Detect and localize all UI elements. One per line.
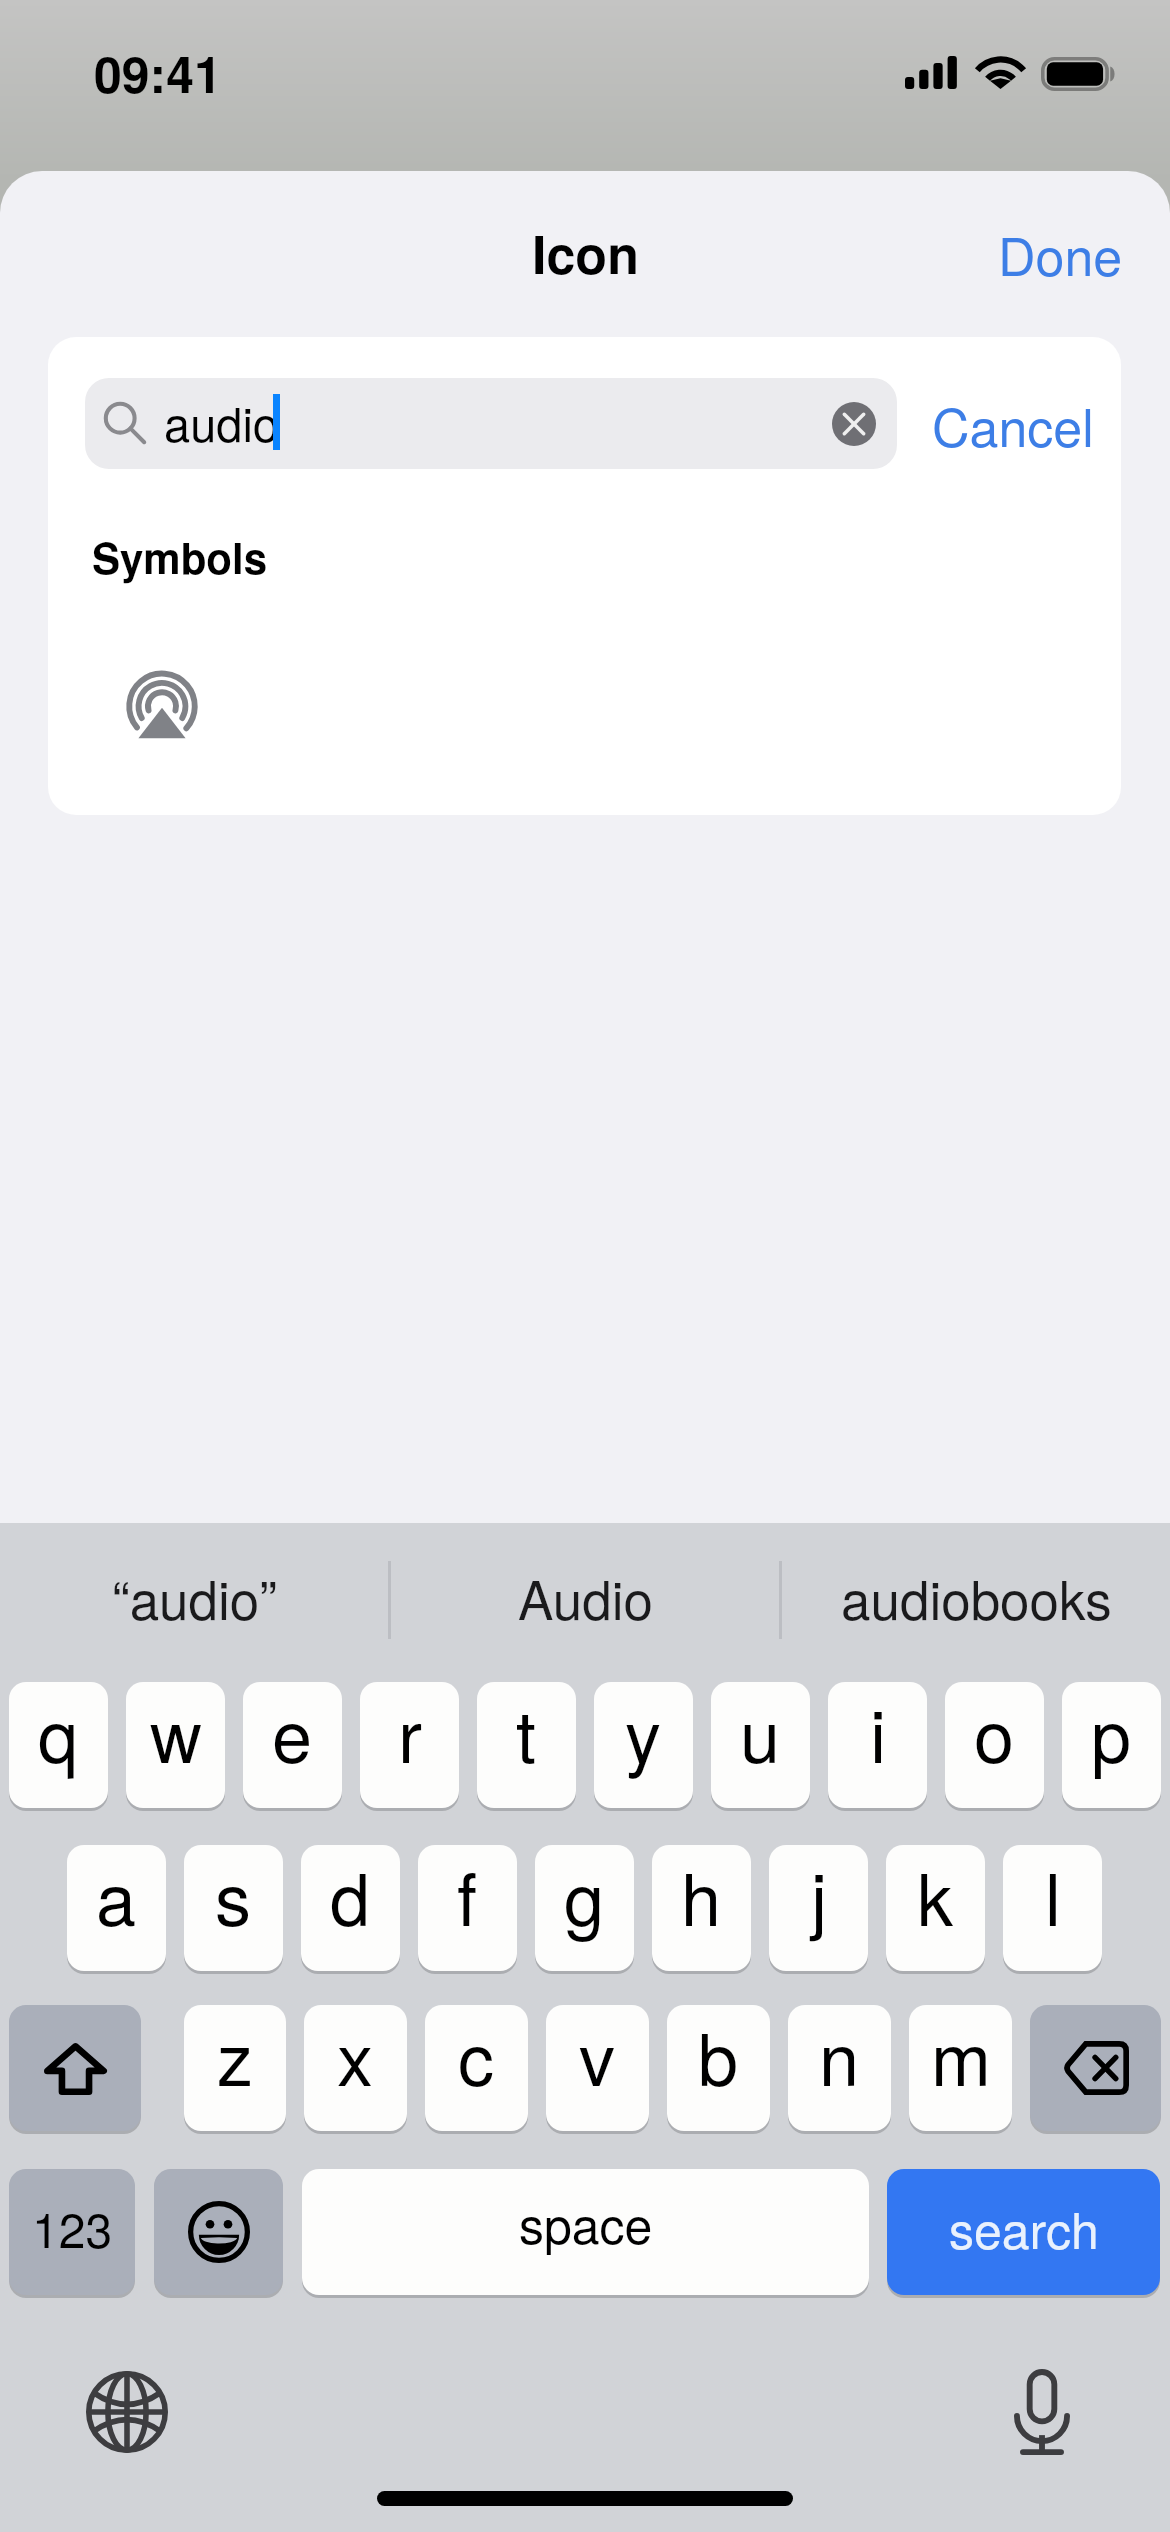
button[interactable]: s — [184, 1845, 283, 1971]
staticText: w — [150, 1682, 202, 1783]
button[interactable]: c — [425, 2005, 528, 2131]
button[interactable]: Backspace — [1030, 2005, 1161, 2131]
button[interactable]: audiobooks — [782, 1523, 1170, 1676]
button[interactable]: l — [1003, 1845, 1102, 1971]
staticText: audiobooks — [841, 1559, 1112, 1635]
staticText: l — [1045, 1845, 1061, 1946]
button[interactable]: v — [546, 2005, 649, 2131]
staticText: b — [698, 2005, 739, 2106]
staticText: y — [625, 1682, 662, 1783]
button[interactable]: Emoji keyboard — [154, 2169, 283, 2295]
button[interactable]: g — [535, 1845, 634, 1971]
button[interactable]: audio — [85, 378, 897, 469]
button[interactable]: y — [594, 1682, 693, 1808]
staticText: t — [516, 1682, 537, 1783]
button[interactable]: Cancel — [932, 378, 1094, 469]
button[interactable]: r — [360, 1682, 459, 1808]
button[interactable]: Done — [974, 200, 1147, 306]
staticText: s — [215, 1845, 252, 1946]
button[interactable]: search — [887, 2169, 1160, 2295]
staticText: h — [681, 1845, 722, 1946]
button[interactable]: Audio — [391, 1523, 779, 1676]
staticText: p — [1091, 1682, 1132, 1783]
button[interactable]: a — [67, 1845, 166, 1971]
staticText: “audio” — [112, 1559, 277, 1635]
button[interactable]: t — [477, 1682, 576, 1808]
staticText: i — [870, 1682, 886, 1783]
staticText: z — [217, 2005, 254, 2106]
staticText: u — [740, 1682, 781, 1783]
staticText: Icon — [532, 215, 639, 289]
staticText: j — [811, 1845, 827, 1946]
staticText: g — [564, 1845, 605, 1946]
staticText: Cancel — [932, 387, 1094, 461]
button[interactable]: “audio” — [0, 1523, 388, 1676]
button[interactable]: j — [769, 1845, 868, 1971]
staticText: audio — [164, 388, 279, 455]
button[interactable]: x — [304, 2005, 407, 2131]
staticText: r — [398, 1682, 422, 1783]
button[interactable]: e — [243, 1682, 342, 1808]
staticText: e — [272, 1682, 313, 1783]
button[interactable]: i — [828, 1682, 927, 1808]
staticText: x — [337, 2005, 374, 2106]
button[interactable]: m — [909, 2005, 1012, 2131]
button[interactable]: Clear text — [832, 402, 876, 446]
button[interactable]: Next keyboard — [67, 2352, 187, 2472]
button[interactable]: space — [302, 2169, 869, 2295]
button[interactable]: u — [711, 1682, 810, 1808]
button[interactable]: Shift — [9, 2005, 141, 2131]
staticText: q — [38, 1682, 79, 1783]
button[interactable]: Dictate — [1002, 2352, 1082, 2472]
staticText: space — [519, 2187, 653, 2259]
button[interactable]: h — [652, 1845, 751, 1971]
button[interactable]: k — [886, 1845, 985, 1971]
button[interactable]: p — [1062, 1682, 1161, 1808]
staticText: n — [819, 2005, 860, 2106]
staticText: m — [931, 2005, 991, 2106]
staticText: 123 — [32, 2193, 113, 2262]
button[interactable]: b — [667, 2005, 770, 2131]
button[interactable]: f — [418, 1845, 517, 1971]
staticText: Audio — [518, 1559, 653, 1635]
button[interactable]: d — [301, 1845, 400, 1971]
button[interactable]: z — [184, 2005, 286, 2131]
staticText: d — [330, 1845, 371, 1946]
staticText: search — [949, 2192, 1099, 2264]
staticText: Symbols — [92, 527, 268, 587]
staticText: c — [458, 2005, 495, 2106]
button[interactable]: 123 — [9, 2169, 135, 2295]
button[interactable]: q — [9, 1682, 108, 1808]
button[interactable]: n — [788, 2005, 891, 2131]
staticText: o — [974, 1682, 1015, 1783]
staticText: k — [917, 1845, 954, 1946]
button[interactable]: w — [126, 1682, 225, 1808]
button[interactable]: o — [945, 1682, 1044, 1808]
staticText: f — [457, 1845, 478, 1946]
staticText: Done — [998, 216, 1123, 290]
staticText: 09:41 — [94, 37, 222, 109]
staticText: v — [579, 2005, 616, 2106]
staticText: a — [96, 1845, 137, 1946]
